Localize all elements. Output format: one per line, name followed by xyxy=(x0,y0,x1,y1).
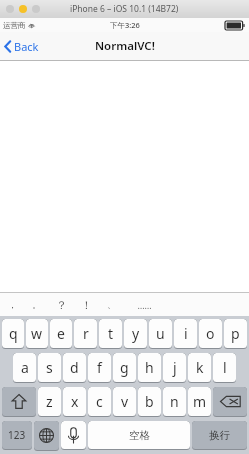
button[interactable]: Switch keyboard xyxy=(34,421,59,450)
staticText: ， xyxy=(8,299,17,310)
staticText: p xyxy=(231,324,240,343)
staticText: NormalVC! xyxy=(95,38,155,54)
staticText: x xyxy=(71,392,79,411)
button[interactable]: l xyxy=(213,353,236,382)
staticText: t xyxy=(108,324,114,343)
button[interactable]: s xyxy=(38,353,61,382)
button[interactable]: …… xyxy=(124,293,164,316)
button[interactable]: Shift xyxy=(2,387,36,416)
staticText: 123 xyxy=(8,428,26,442)
button[interactable]: Dictation xyxy=(61,421,86,449)
button[interactable]: Back xyxy=(0,35,47,58)
staticText: 换行 xyxy=(209,429,230,442)
staticText: n xyxy=(170,392,179,411)
button[interactable]: p xyxy=(224,319,247,348)
staticText: ！ xyxy=(81,298,92,312)
staticText: 运营商 xyxy=(3,21,26,30)
staticText: a xyxy=(21,358,29,377)
staticText: v xyxy=(121,392,129,411)
staticText: i xyxy=(184,324,188,343)
staticText: j xyxy=(173,358,177,377)
staticText: b xyxy=(145,392,154,411)
staticText: u xyxy=(156,324,165,343)
staticText: g xyxy=(120,358,129,377)
staticText: 。 xyxy=(32,299,41,310)
button[interactable]: w xyxy=(26,319,48,348)
button[interactable]: q xyxy=(2,319,24,348)
button[interactable]: k xyxy=(188,353,211,382)
staticText: z xyxy=(46,392,53,411)
staticText: k xyxy=(196,358,204,377)
button[interactable]: 、 xyxy=(99,293,124,316)
staticText: Back xyxy=(14,39,39,54)
button[interactable]: r xyxy=(74,319,97,348)
button[interactable]: 换行 xyxy=(192,421,247,449)
button[interactable]: 空格 xyxy=(88,421,190,449)
staticText: y xyxy=(132,324,140,343)
button[interactable]: ， xyxy=(0,293,24,316)
button[interactable]: i xyxy=(174,319,197,348)
button[interactable]: ？ xyxy=(49,293,74,316)
button[interactable]: d xyxy=(63,353,86,382)
staticText: q xyxy=(9,324,18,343)
staticText: m xyxy=(193,392,207,411)
staticText: d xyxy=(70,358,79,377)
button[interactable]: n xyxy=(163,387,186,416)
button[interactable]: g xyxy=(113,353,136,382)
staticText: 空格 xyxy=(129,429,150,442)
button[interactable]: j xyxy=(163,353,186,382)
staticText: l xyxy=(223,358,227,377)
button[interactable]: y xyxy=(124,319,147,348)
staticText: e xyxy=(57,324,65,343)
staticText: …… xyxy=(137,299,152,311)
button[interactable]: b xyxy=(138,387,161,416)
button[interactable]: Backspace xyxy=(213,387,247,416)
button[interactable]: z xyxy=(38,387,61,416)
staticText: o xyxy=(206,324,215,343)
staticText: ？ xyxy=(56,298,67,312)
button[interactable]: v xyxy=(113,387,136,416)
button[interactable]: m xyxy=(188,387,211,416)
staticText: s xyxy=(46,358,53,377)
button[interactable]: a xyxy=(13,353,36,382)
button[interactable]: x xyxy=(63,387,86,416)
staticText: w xyxy=(31,324,43,343)
button[interactable]: 。 xyxy=(24,293,49,316)
staticText: h xyxy=(145,358,154,377)
staticText: f xyxy=(97,358,102,377)
staticText: r xyxy=(83,324,89,343)
staticText: c xyxy=(96,392,103,411)
button[interactable]: u xyxy=(149,319,172,348)
button[interactable]: e xyxy=(50,319,72,348)
button[interactable]: f xyxy=(88,353,111,382)
staticText: iPhone 6 – iOS 10.1 (14B72) xyxy=(70,3,179,15)
staticText: 、 xyxy=(107,299,116,310)
button[interactable]: 123 xyxy=(2,421,32,449)
button[interactable]: t xyxy=(99,319,122,348)
button[interactable]: c xyxy=(88,387,111,416)
button[interactable]: ！ xyxy=(74,293,99,316)
button[interactable]: o xyxy=(199,319,222,348)
staticText: 下午3:26 xyxy=(110,20,140,30)
button[interactable]: h xyxy=(138,353,161,382)
